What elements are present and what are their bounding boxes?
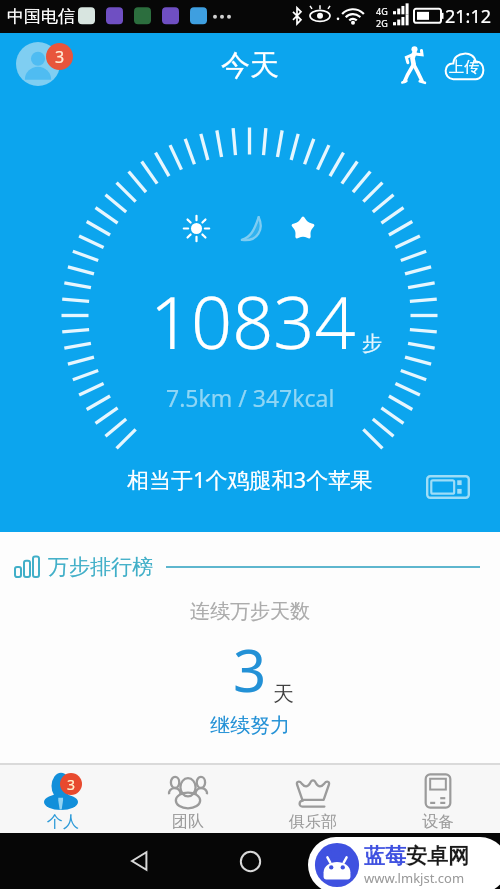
button[interactable]: 俱乐部	[250, 765, 375, 833]
staticText: www.lmkjst.com	[364, 869, 465, 887]
staticText: 安卓网	[406, 843, 469, 869]
staticText: 俱乐部	[289, 812, 337, 832]
staticText: 万步排行榜	[48, 554, 153, 580]
staticText: 蓝莓	[364, 843, 406, 869]
staticText: 4G	[376, 5, 388, 17]
staticText: 7.5km / 347kcal	[166, 382, 335, 413]
button[interactable]: 团队	[125, 765, 250, 833]
staticText: 连续万步天数	[0, 599, 500, 624]
button[interactable]: Device screen	[424, 471, 472, 503]
button[interactable]: Upload	[438, 44, 490, 86]
staticText: 3	[55, 46, 65, 68]
staticText: 中国电信	[7, 6, 75, 27]
staticText: 3	[67, 775, 76, 794]
staticText: 步	[362, 331, 382, 356]
staticText: 相当于1个鸡腿和3个苹果	[127, 464, 373, 494]
staticText: 21:12	[445, 4, 492, 29]
button[interactable]: 继续努力	[0, 713, 500, 738]
staticText: 今天	[221, 47, 279, 84]
button[interactable]: 3	[0, 765, 125, 833]
staticText: 团队	[172, 812, 204, 832]
button[interactable]: Back	[118, 839, 162, 883]
staticText: 10834	[150, 272, 356, 370]
staticText: 设备	[422, 812, 454, 832]
staticText: 个人	[47, 812, 79, 832]
button[interactable]: 设备	[375, 765, 500, 833]
button[interactable]: Profile	[16, 42, 60, 86]
staticText: 天	[273, 681, 294, 707]
staticText: 2G	[376, 17, 388, 29]
button[interactable]: Home	[228, 839, 272, 883]
staticText: 上传	[449, 58, 479, 77]
button[interactable]: Walking activity	[392, 43, 436, 87]
staticText: 3	[233, 630, 267, 709]
